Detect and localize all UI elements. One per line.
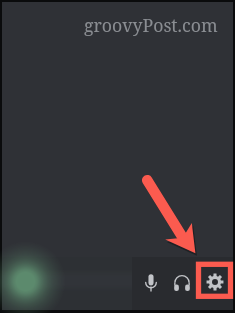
staticText: groovyPost.com: [84, 13, 218, 37]
button[interactable]: User settings: [202, 269, 228, 295]
button[interactable]: Mute microphone: [138, 269, 164, 295]
button[interactable]: Voice connected: [2, 257, 132, 310]
button[interactable]: Deafen: [169, 269, 195, 295]
